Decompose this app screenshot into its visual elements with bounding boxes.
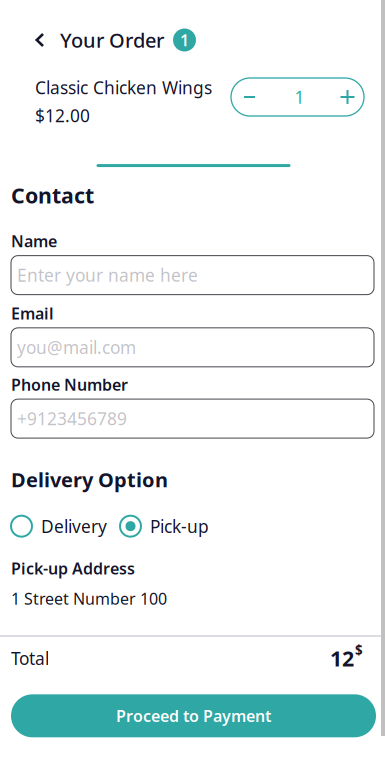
staticText: Email bbox=[11, 303, 54, 324]
staticText: Your Order bbox=[60, 27, 164, 53]
staticText: Enter your name here bbox=[17, 264, 198, 287]
staticText: 1 Street Number 100 bbox=[11, 588, 167, 609]
button[interactable]: Email bbox=[11, 328, 374, 367]
button[interactable]: Proceed to Payment bbox=[11, 694, 376, 737]
staticText: you@mail.com bbox=[17, 336, 136, 359]
staticText: Name bbox=[11, 230, 57, 252]
staticText: 1 bbox=[294, 85, 304, 108]
staticText: Delivery bbox=[41, 515, 107, 538]
button[interactable]: Decrease quantity bbox=[231, 78, 268, 116]
staticText: Phone Number bbox=[11, 374, 128, 395]
staticText: Proceed to Payment bbox=[116, 705, 271, 726]
staticText: Total bbox=[11, 647, 49, 670]
staticText: Pick-up bbox=[150, 515, 209, 538]
staticText: Contact bbox=[11, 181, 94, 209]
staticText: 1 bbox=[180, 29, 189, 51]
staticText: $12.00 bbox=[35, 104, 90, 127]
button[interactable]: Pick-up bbox=[120, 515, 209, 538]
staticText: $ bbox=[355, 641, 363, 659]
staticText: Pick-up Address bbox=[11, 558, 135, 579]
button[interactable]: Phone Number bbox=[11, 399, 374, 438]
staticText: +9123456789 bbox=[17, 407, 127, 430]
button[interactable]: Increase quantity bbox=[331, 78, 364, 116]
button[interactable]: Name bbox=[11, 256, 374, 295]
staticText: 12 bbox=[330, 644, 354, 672]
staticText: Delivery Option bbox=[11, 466, 168, 493]
button[interactable]: Delivery bbox=[11, 515, 107, 538]
staticText: Classic Chicken Wings bbox=[35, 76, 212, 99]
button[interactable]: Back bbox=[22, 25, 58, 55]
